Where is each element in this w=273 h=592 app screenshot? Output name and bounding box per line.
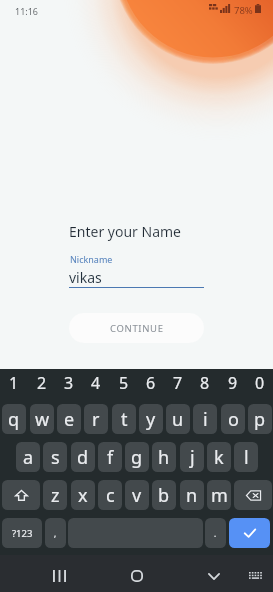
staticText: Nickname (70, 253, 113, 265)
button[interactable]: , (45, 518, 66, 548)
button[interactable]: a (16, 442, 40, 472)
button[interactable]: 8 (193, 370, 217, 396)
button[interactable]: CONTINUE (69, 313, 204, 343)
staticText: f (107, 445, 114, 470)
button[interactable]: u (166, 404, 190, 434)
staticText: q (8, 407, 20, 432)
staticText: . (214, 528, 217, 539)
button[interactable]: Enter (229, 518, 270, 548)
button[interactable]: w (30, 404, 54, 434)
button[interactable]: b (152, 480, 176, 510)
button[interactable]: p (248, 404, 272, 434)
staticText: t (121, 407, 128, 432)
button[interactable]: n (180, 480, 204, 510)
staticText: c (106, 483, 115, 508)
button[interactable]: o (221, 404, 245, 434)
button[interactable]: 1 (2, 370, 26, 396)
staticText: y (146, 407, 156, 432)
staticText: e (64, 407, 75, 432)
button[interactable]: 9 (221, 370, 245, 396)
staticText: ?123 (12, 527, 33, 540)
staticText: , (54, 528, 57, 539)
button[interactable]: e (57, 404, 81, 434)
button[interactable]: 6 (139, 370, 163, 396)
button[interactable]: l (234, 442, 258, 472)
staticText: 0 (255, 372, 265, 394)
button[interactable]: Shift (2, 480, 40, 510)
button[interactable]: 4 (84, 370, 108, 396)
button[interactable]: d (71, 442, 95, 472)
button[interactable]: j (180, 442, 204, 472)
staticText: 6 (146, 372, 156, 394)
staticText: b (158, 483, 170, 508)
button[interactable]: r (84, 404, 108, 434)
button[interactable]: Change keyboard (236, 565, 273, 587)
button[interactable]: Symbols (2, 518, 42, 548)
button[interactable]: 2 (30, 370, 54, 396)
button[interactable]: g (125, 442, 149, 472)
button[interactable]: s (43, 442, 67, 472)
button[interactable]: 5 (112, 370, 136, 396)
staticText: g (131, 445, 143, 470)
button[interactable]: y (139, 404, 163, 434)
button[interactable]: Backspace (234, 480, 272, 510)
staticText: 2 (37, 372, 47, 394)
staticText: Enter your Name (69, 222, 181, 241)
staticText: CONTINUE (110, 322, 164, 335)
staticText: 8 (200, 372, 210, 394)
button[interactable]: 0 (248, 370, 272, 396)
staticText: n (186, 483, 198, 508)
staticText: m (211, 483, 228, 508)
staticText: p (254, 407, 266, 432)
staticText: d (77, 445, 89, 470)
button[interactable]: q (2, 404, 26, 434)
staticText: r (92, 407, 100, 432)
staticText: h (158, 445, 170, 470)
staticText: u (172, 407, 184, 432)
button[interactable]: m (207, 480, 231, 510)
button[interactable]: k (207, 442, 231, 472)
staticText: 9 (228, 372, 238, 394)
button[interactable]: z (43, 480, 67, 510)
staticText: v (132, 483, 142, 508)
button[interactable]: Home (117, 565, 157, 587)
staticText: 5 (119, 372, 129, 394)
button[interactable]: c (98, 480, 122, 510)
button[interactable]: i (193, 404, 217, 434)
staticText: i (203, 407, 208, 432)
button[interactable]: . (205, 518, 226, 548)
button[interactable]: Hide keyboard (194, 565, 234, 587)
staticText: a (23, 445, 34, 470)
staticText: z (51, 483, 60, 508)
button[interactable]: 7 (166, 370, 190, 396)
staticText: 1 (9, 372, 19, 394)
staticText: vikas (69, 268, 102, 287)
staticText: 4 (91, 372, 101, 394)
button[interactable]: f (98, 442, 122, 472)
staticText: 11:16 (15, 5, 39, 17)
staticText: j (190, 445, 195, 470)
staticText: 7 (173, 372, 183, 394)
button[interactable]: t (112, 404, 136, 434)
staticText: o (228, 407, 239, 432)
staticText: s (51, 445, 60, 470)
button[interactable]: h (152, 442, 176, 472)
button[interactable]: 3 (57, 370, 81, 396)
staticText: 78% (234, 4, 253, 17)
staticText: x (78, 483, 88, 508)
staticText: l (244, 445, 249, 470)
button[interactable]: v (125, 480, 149, 510)
staticText: w (35, 407, 50, 432)
button[interactable]: x (71, 480, 95, 510)
staticText: k (214, 445, 224, 470)
staticText: 3 (64, 372, 74, 394)
button[interactable]: Recents (39, 565, 79, 587)
